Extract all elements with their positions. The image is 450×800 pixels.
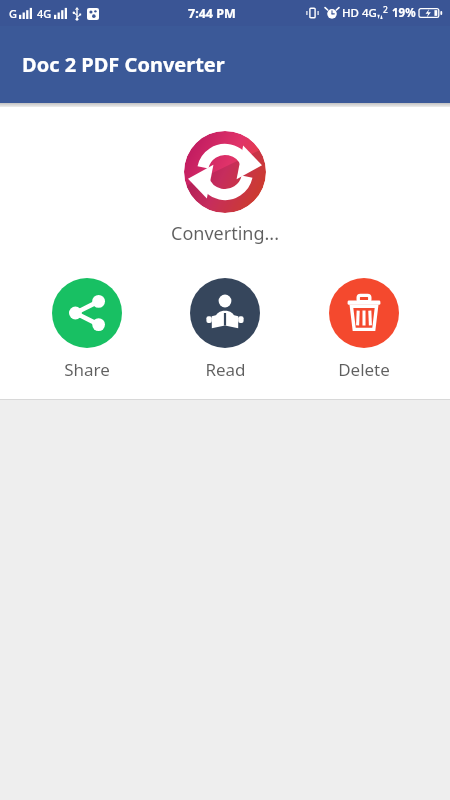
staticText: 2 bbox=[383, 4, 388, 16]
staticText: G bbox=[9, 6, 17, 21]
staticText: HD bbox=[342, 5, 360, 21]
staticText: Converting... bbox=[171, 221, 279, 246]
staticText: Delete bbox=[338, 358, 390, 381]
staticText: 19% bbox=[392, 5, 416, 21]
staticText: 4G bbox=[37, 6, 52, 21]
staticText: 7:44 PM bbox=[188, 5, 236, 22]
button[interactable]: Delete bbox=[312, 276, 416, 383]
staticText: 4G bbox=[362, 5, 377, 21]
staticText: Doc 2 PDF Converter bbox=[22, 51, 225, 78]
button[interactable]: Read bbox=[173, 276, 277, 383]
button[interactable]: Share bbox=[35, 276, 139, 383]
staticText: Read bbox=[205, 358, 246, 381]
staticText: Share bbox=[64, 358, 110, 381]
button[interactable]: Converting bbox=[184, 131, 266, 213]
